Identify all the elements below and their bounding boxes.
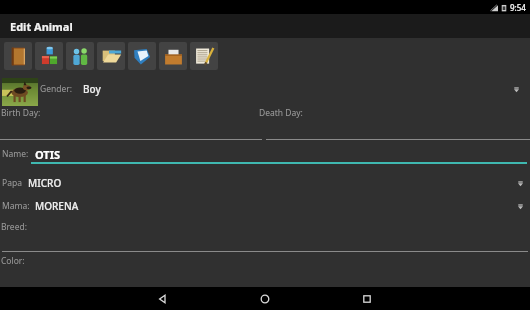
staticText: Birth Day: (1, 107, 41, 119)
button[interactable]: Mama: (2, 197, 526, 215)
button[interactable]: Home (252, 287, 278, 310)
button[interactable]: Name: (2, 145, 526, 163)
staticText: MORENA (35, 199, 79, 213)
button[interactable]: Report (190, 42, 218, 70)
button[interactable]: Notes (128, 42, 156, 70)
staticText: Mama: (2, 200, 30, 212)
button[interactable]: Birth day field (0, 122, 262, 140)
staticText: Death Day: (259, 107, 303, 119)
staticText: Breed: (1, 221, 27, 233)
button[interactable]: People (66, 42, 94, 70)
staticText: Name: (2, 148, 29, 160)
button[interactable]: Death day field (266, 122, 530, 140)
button[interactable]: Recent apps (354, 287, 380, 310)
staticText: Color: (1, 255, 25, 267)
staticText: OTIS (35, 147, 61, 162)
staticText: Edit Animal (10, 19, 73, 34)
staticText: Boy (83, 82, 101, 96)
staticText: 9:54 (510, 2, 526, 13)
button[interactable]: Gender: (40, 80, 522, 98)
button[interactable]: Folder (97, 42, 125, 70)
button[interactable]: Breed field (2, 234, 528, 252)
staticText: MICRO (28, 176, 62, 190)
button[interactable]: Back (150, 287, 176, 310)
staticText: Gender: (40, 83, 73, 95)
button[interactable]: Archive box (159, 42, 187, 70)
button[interactable]: Papa (2, 174, 526, 192)
button[interactable]: Animal photo (2, 78, 38, 106)
button[interactable]: Groups (35, 42, 63, 70)
staticText: Papa (2, 177, 22, 189)
button[interactable]: Animals book (4, 42, 32, 70)
